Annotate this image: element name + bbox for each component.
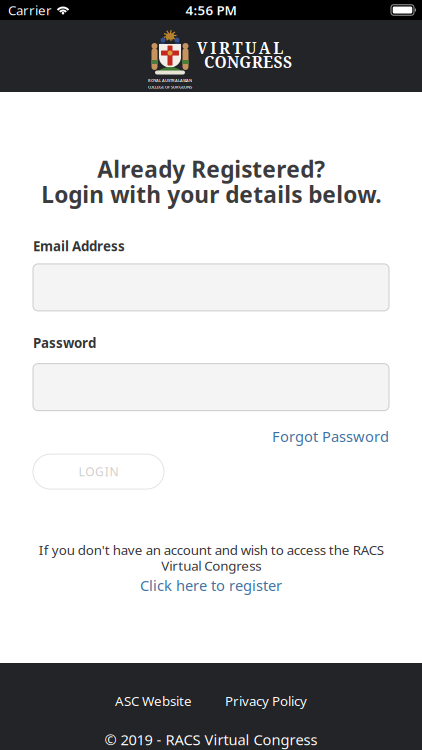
staticText: Privacy Policy xyxy=(225,692,307,710)
button[interactable]: LOGIN xyxy=(33,454,164,489)
staticText: COLLEGE OF SURGEONS xyxy=(148,84,192,90)
staticText: Already Registered? Login with your deta… xyxy=(41,154,381,209)
staticText: Password xyxy=(33,334,96,352)
button[interactable]: ASC Website xyxy=(115,692,192,710)
staticText: If you don't have an account and wish to… xyxy=(38,541,383,574)
staticText: VIRTUAL xyxy=(197,37,283,58)
staticText: © 2019 - RACS Virtual Congress xyxy=(104,730,317,749)
staticText: LOGIN xyxy=(78,464,119,479)
button[interactable]: Privacy Policy xyxy=(225,692,307,710)
button[interactable]: Email Address xyxy=(33,264,389,311)
staticText: 4:56 PM xyxy=(185,1,236,19)
staticText: Forgot Password xyxy=(272,427,389,446)
staticText: ASC Website xyxy=(115,692,192,710)
button[interactable]: Password xyxy=(33,364,389,411)
staticText: Click here to register xyxy=(140,575,282,595)
button[interactable]: Click here to register xyxy=(140,575,282,595)
staticText: Email Address xyxy=(33,237,125,255)
staticText: ROYAL AUSTRALASIAN xyxy=(148,78,192,83)
staticText: Carrier xyxy=(8,1,52,19)
button[interactable]: Forgot Password xyxy=(272,427,389,446)
staticText: CONGRESS xyxy=(204,51,292,72)
